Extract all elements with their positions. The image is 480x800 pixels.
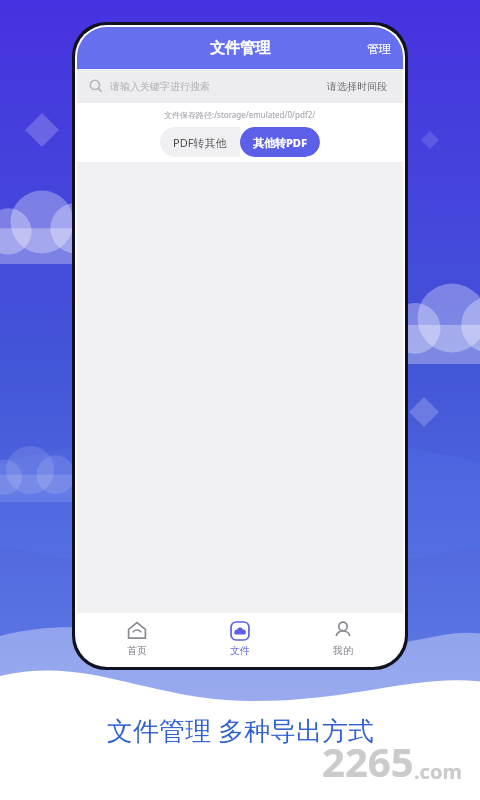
- button[interactable]: 我的: [300, 617, 386, 661]
- staticText: 首页: [127, 644, 147, 657]
- button[interactable]: 请输入关键字进行搜索: [89, 79, 323, 93]
- staticText: 2265: [322, 734, 414, 788]
- button[interactable]: 其他转PDF: [240, 127, 320, 157]
- staticText: PDF转其他: [173, 135, 227, 150]
- button[interactable]: 请选择时间段: [323, 74, 391, 99]
- staticText: 管理: [367, 41, 391, 56]
- other: 我的: [333, 621, 353, 641]
- staticText: .com: [414, 758, 462, 785]
- staticText: 文件管理 多种导出方式: [107, 712, 374, 748]
- button[interactable]: 管理: [355, 33, 403, 64]
- button[interactable]: PDF转其他: [160, 127, 240, 157]
- button[interactable]: 文件: [197, 617, 283, 661]
- staticText: 我的: [333, 644, 353, 657]
- staticText: 其他转PDF: [253, 135, 307, 150]
- button[interactable]: 首页: [94, 617, 180, 661]
- other: 首页: [127, 621, 147, 641]
- staticText: 文件: [230, 644, 250, 657]
- staticText: 文件保存路径:/storage/emulated/0/pdf2/: [164, 109, 316, 120]
- staticText: 文件管理: [210, 39, 270, 58]
- other: 文件: [230, 621, 250, 641]
- staticText: 请输入关键字进行搜索: [110, 80, 210, 93]
- staticText: 请选择时间段: [327, 80, 387, 93]
